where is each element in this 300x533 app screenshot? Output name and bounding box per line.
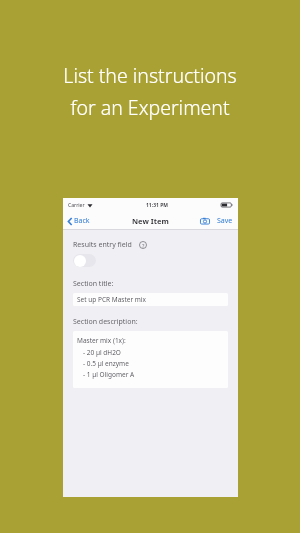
staticText: Master mix (1x): bbox=[77, 336, 126, 345]
button[interactable]: Set up PCR Master mix bbox=[73, 293, 228, 306]
button[interactable]: Back bbox=[66, 214, 92, 228]
staticText: Set up PCR Master mix bbox=[77, 295, 146, 304]
button[interactable]: Save bbox=[216, 214, 234, 228]
staticText: List the instructions bbox=[63, 62, 237, 89]
staticText: - 0.5 µl enzyme bbox=[83, 359, 129, 368]
staticText: ? bbox=[142, 242, 145, 249]
staticText: Back bbox=[74, 216, 90, 226]
button[interactable]: Results entry field toggle bbox=[73, 254, 96, 267]
staticText: New Item bbox=[132, 216, 169, 226]
staticText: - 1 µl Oligomer A bbox=[83, 370, 135, 379]
button[interactable]: Master mix (1x): bbox=[73, 331, 228, 388]
staticText: Carrier bbox=[68, 202, 85, 209]
button[interactable]: Help bbox=[139, 241, 147, 249]
button[interactable]: Take photo bbox=[199, 216, 211, 226]
staticText: Section description: bbox=[73, 317, 138, 327]
staticText: Save bbox=[217, 216, 233, 226]
staticText: 11:31 PM bbox=[146, 202, 168, 209]
staticText: - 20 µl dH2O bbox=[83, 348, 121, 357]
staticText: Results entry field bbox=[73, 240, 132, 250]
staticText: Section title: bbox=[73, 279, 114, 289]
staticText: for an Experiment bbox=[70, 94, 230, 121]
